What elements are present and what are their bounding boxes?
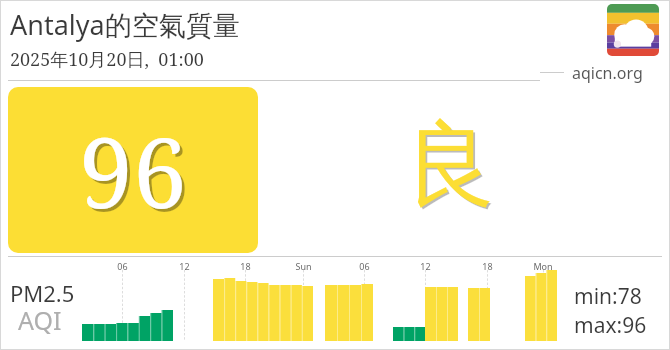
staticText: aqicn.org: [572, 62, 643, 84]
button[interactable]: aqicn.org logo: [607, 4, 659, 56]
staticText: 2025年10月20日, 01:00: [10, 47, 204, 72]
staticText: 96: [79, 105, 187, 236]
staticText: 12: [179, 260, 190, 272]
staticText: Sun: [295, 260, 312, 272]
staticText: Mon: [533, 260, 553, 272]
staticText: 18: [482, 260, 493, 272]
button[interactable]: PM2.5 AQI forecast chart: [0, 0, 670, 350]
staticText: 06: [359, 260, 370, 272]
staticText: Antalya的空氣質量: [10, 6, 240, 43]
staticText: 96: [82, 108, 190, 239]
staticText: AQI: [18, 303, 62, 337]
staticText: PM2.5: [10, 278, 75, 308]
staticText: max:96: [574, 311, 647, 340]
button[interactable]: 96: [8, 87, 258, 253]
staticText: 良: [406, 109, 498, 225]
staticText: 18: [240, 260, 251, 272]
staticText: min:78: [574, 282, 642, 311]
staticText: 06: [117, 260, 128, 272]
staticText: 12: [420, 260, 431, 272]
staticText: 良: [404, 107, 496, 223]
